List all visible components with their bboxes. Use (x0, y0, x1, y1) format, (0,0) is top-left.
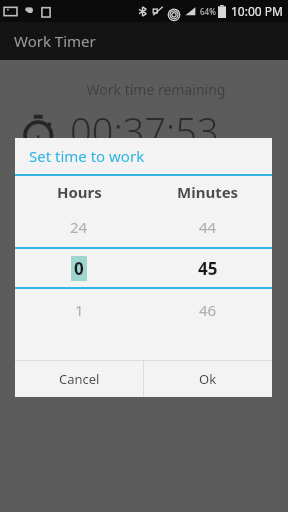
staticText: Work Timer (14, 31, 96, 51)
button[interactable]: 46 (143, 300, 272, 320)
staticText: 45 (198, 257, 218, 280)
button[interactable]: 44 (143, 217, 272, 237)
staticText: 00:37:53 (70, 105, 219, 157)
staticText: 44 (199, 217, 217, 237)
staticText: Set time to work (29, 146, 145, 166)
button[interactable]: Ok (144, 361, 272, 397)
staticText: 10:00 PM (231, 3, 283, 19)
staticText: 1 (75, 300, 84, 320)
button[interactable]: 1 (15, 300, 143, 320)
staticText: Hours (57, 182, 102, 202)
staticText: 64% (200, 6, 216, 17)
button[interactable]: 24 (15, 217, 143, 237)
button[interactable]: 0 (15, 256, 143, 281)
staticText: Ok (199, 370, 217, 388)
staticText: 46 (199, 300, 217, 320)
staticText: 0 (74, 257, 84, 280)
staticText: Minutes (177, 182, 239, 202)
staticText: 24 (70, 217, 88, 237)
staticText: Work time remaining (24, 80, 288, 99)
button[interactable]: 45 (143, 257, 272, 280)
staticText: Cancel (59, 370, 100, 388)
button[interactable]: Cancel (15, 361, 143, 397)
